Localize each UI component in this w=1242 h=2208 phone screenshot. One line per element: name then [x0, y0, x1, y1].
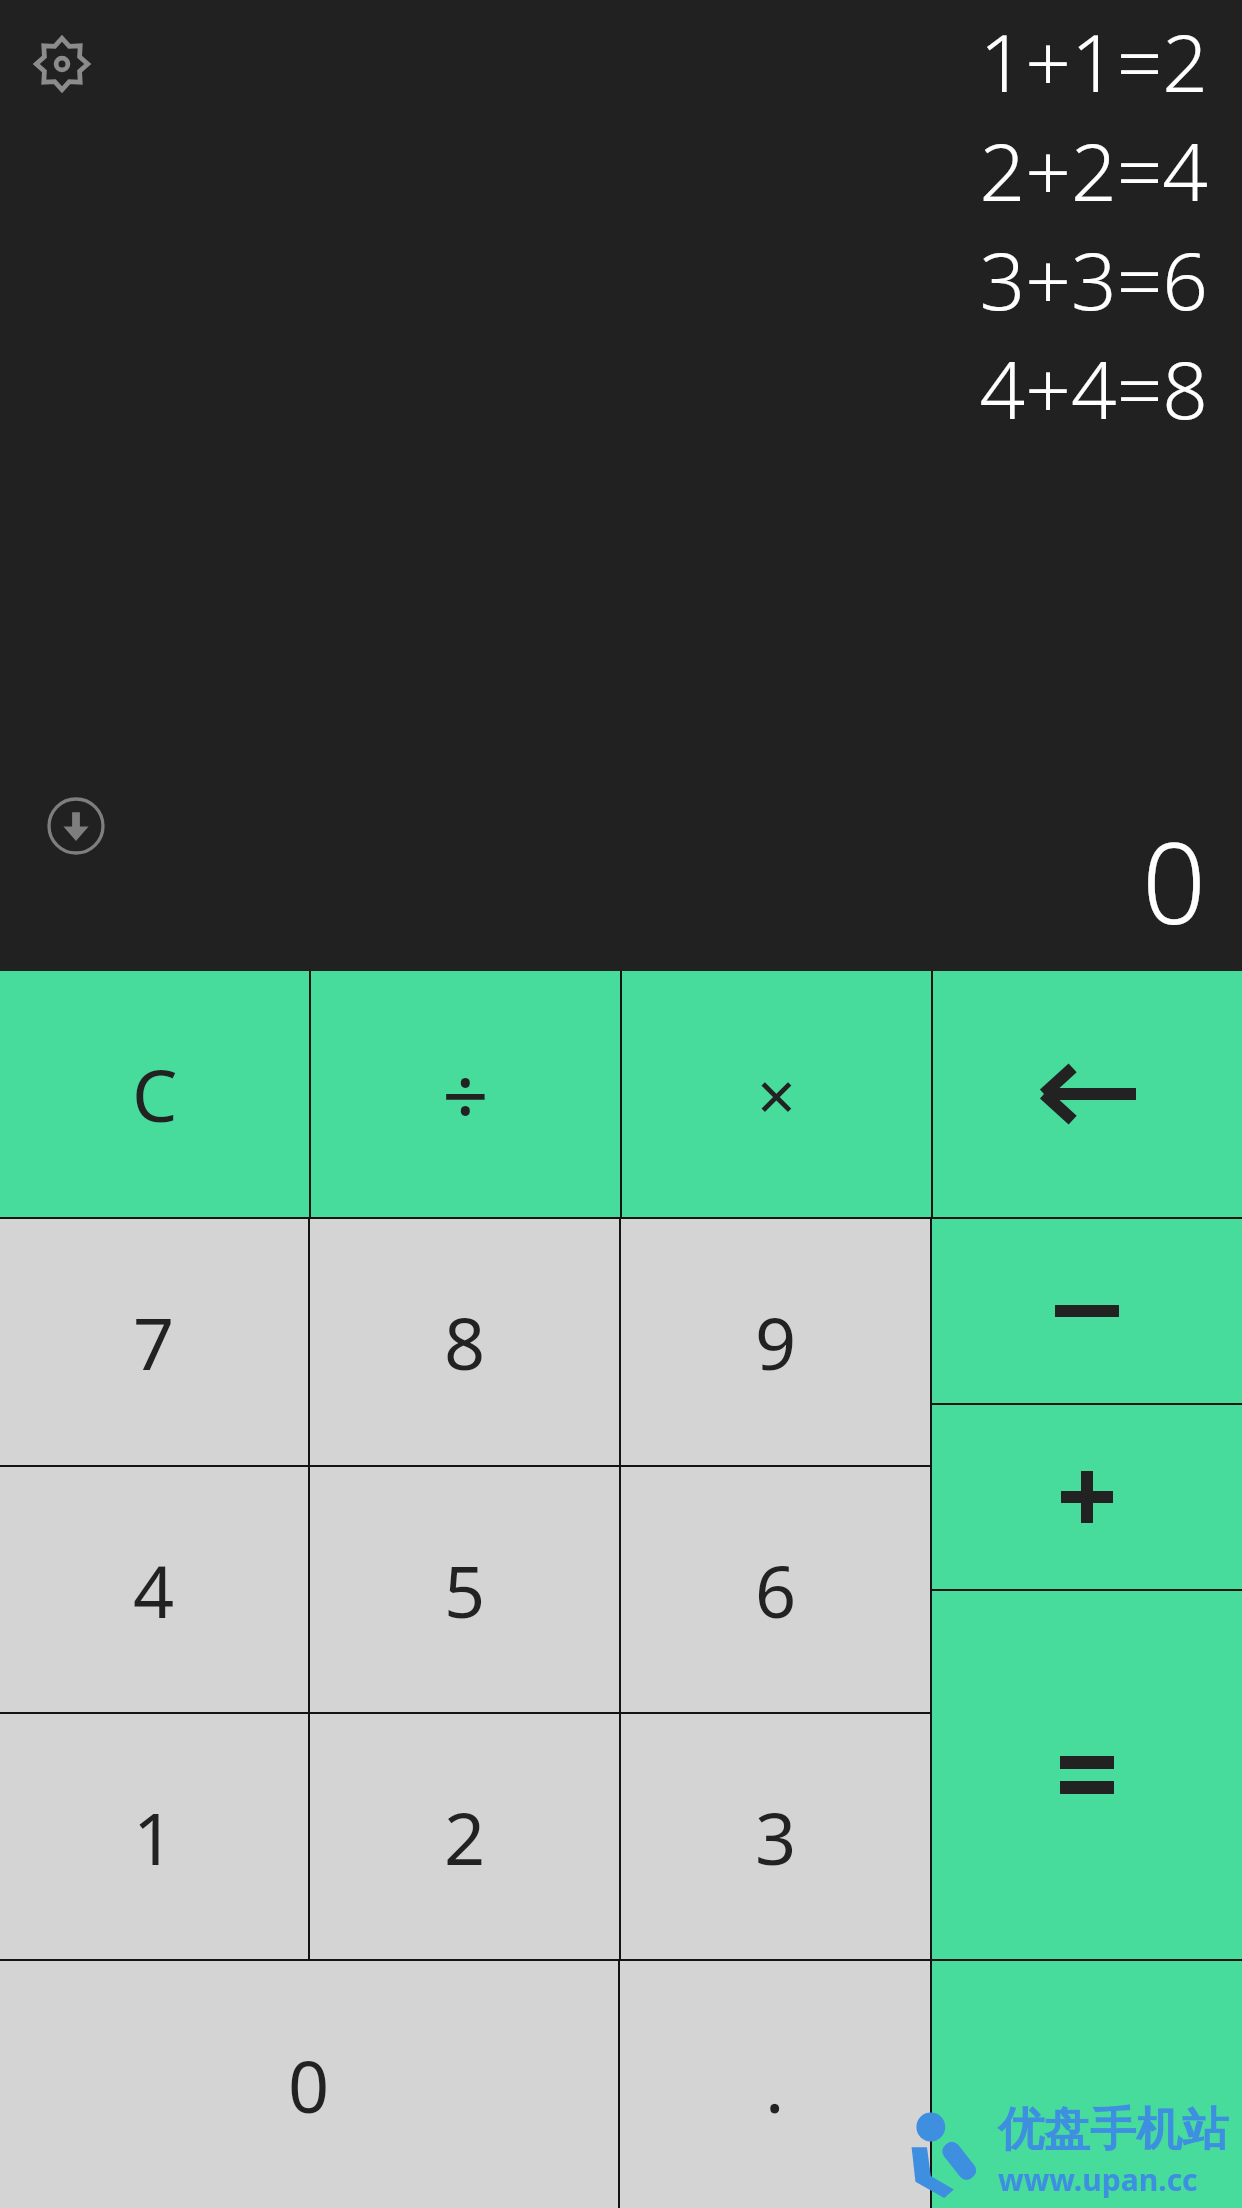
- staticText: ÷: [442, 1038, 489, 1150]
- button[interactable]: 6: [621, 1467, 930, 1712]
- button[interactable]: 8: [310, 1219, 619, 1465]
- button[interactable]: ÷: [311, 971, 620, 1217]
- staticText: 2+2=4: [979, 115, 1208, 224]
- staticText: 4+4=8: [979, 333, 1208, 442]
- staticText: 0: [1142, 804, 1206, 957]
- staticText: 9: [755, 1293, 797, 1391]
- button[interactable]: 1: [0, 1714, 308, 1959]
- staticText: 3+3=6: [979, 224, 1208, 333]
- button[interactable]: .: [620, 1961, 930, 2208]
- button[interactable]: 4: [0, 1467, 308, 1712]
- staticText: 5: [444, 1541, 486, 1639]
- button[interactable]: Equals: [932, 1591, 1242, 1959]
- staticText: www.upan.cc: [998, 2159, 1198, 2200]
- button[interactable]: 9: [621, 1219, 930, 1465]
- button[interactable]: Recall history: [40, 790, 112, 862]
- staticText: .: [765, 2036, 785, 2134]
- button[interactable]: Backspace: [933, 971, 1242, 1217]
- staticText: 0: [288, 2036, 330, 2134]
- button[interactable]: Plus: [932, 1405, 1242, 1589]
- button[interactable]: C: [0, 971, 309, 1217]
- button[interactable]: 5: [310, 1467, 619, 1712]
- staticText: 4: [133, 1541, 175, 1639]
- staticText: 优盘手机站: [998, 2101, 1228, 2159]
- staticText: 3: [755, 1788, 797, 1886]
- staticText: ×: [757, 1048, 796, 1141]
- button[interactable]: 2: [310, 1714, 619, 1959]
- staticText: 1+1=2: [979, 6, 1208, 115]
- button[interactable]: Minus: [932, 1219, 1242, 1403]
- button[interactable]: Equals: [932, 1961, 1242, 2208]
- button[interactable]: Settings: [26, 28, 98, 100]
- button[interactable]: ×: [622, 971, 931, 1217]
- staticText: 8: [444, 1293, 486, 1391]
- button[interactable]: 3: [621, 1714, 930, 1959]
- staticText: C: [132, 1045, 178, 1143]
- staticText: 1: [133, 1788, 175, 1886]
- staticText: 7: [133, 1293, 175, 1391]
- button[interactable]: 0: [0, 1961, 618, 2208]
- staticText: 2: [444, 1788, 486, 1886]
- button[interactable]: 7: [0, 1219, 308, 1465]
- staticText: 6: [755, 1541, 797, 1639]
